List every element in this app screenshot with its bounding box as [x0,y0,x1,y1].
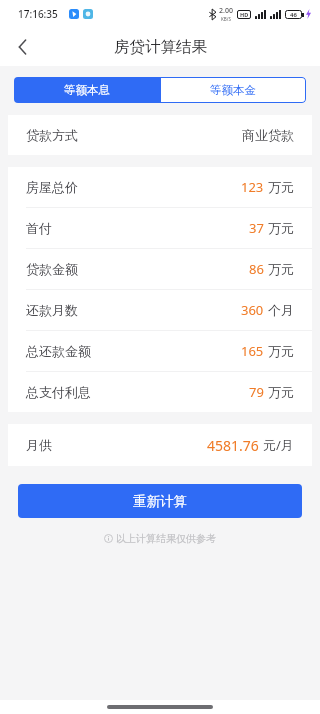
staticText: KB/S [221,16,231,22]
staticText: 万元 [268,179,294,195]
staticText: 重新计算 [133,493,187,510]
staticText: 总还款金额 [26,343,91,359]
staticText: HD [240,11,249,18]
staticText: 123 [241,178,264,196]
staticText: 万元 [268,220,294,236]
staticText: 还款月数 [26,302,78,318]
staticText: 46 [290,11,297,19]
staticText: 商业贷款 [242,127,294,143]
staticText: 总支付利息 [26,384,91,400]
staticText: 首付 [26,220,52,236]
button[interactable]: 贷款方式 [8,115,312,155]
button[interactable]: 重新计算 [18,484,302,518]
button[interactable]: 贷款金额 [8,249,312,289]
button[interactable]: 总支付利息 [8,372,312,412]
staticText: 等额本金 [210,83,256,97]
staticText: 等额本息 [64,83,110,97]
button[interactable]: 首付 [8,208,312,248]
staticText: 以上计算结果仅供参考 [116,532,216,545]
staticText: 165 [241,342,264,360]
staticText: 79 [249,383,264,401]
staticText: 37 [249,219,264,237]
staticText: 万元 [268,261,294,277]
staticText: 元/月 [263,436,294,454]
button[interactable]: 月供 [8,424,312,466]
staticText: 个月 [268,302,294,318]
staticText: 贷款金额 [26,261,78,277]
button[interactable]: Back [5,30,39,64]
staticText: 月供 [26,437,52,453]
staticText: 4581.76 [207,436,259,455]
staticText: 贷款方式 [26,127,78,143]
staticText: 房贷计算结果 [114,37,207,57]
staticText: 万元 [268,343,294,359]
button[interactable]: 等额本金 [160,77,306,103]
button[interactable]: 等额本息 [14,77,160,103]
button[interactable]: 还款月数 [8,290,312,330]
button[interactable]: 房屋总价 [8,167,312,207]
staticText: 2.00 [219,6,233,16]
button[interactable]: 总还款金额 [8,331,312,371]
staticText: 360 [241,301,264,319]
staticText: 86 [249,260,264,278]
staticText: 17:16:35 [18,7,58,21]
staticText: 万元 [268,384,294,400]
staticText: 房屋总价 [26,179,78,195]
